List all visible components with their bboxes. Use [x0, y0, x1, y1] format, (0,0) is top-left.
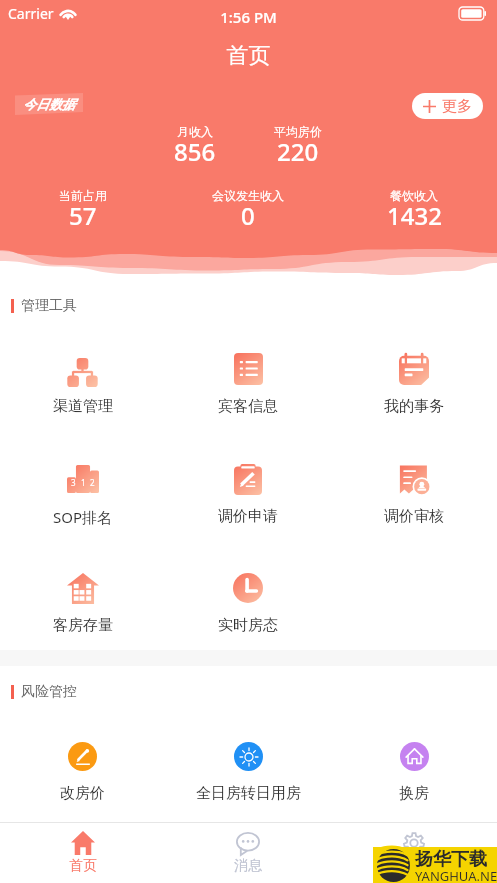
button[interactable]: 渠道管理	[0, 353, 165, 416]
staticText: 月收入	[177, 124, 213, 139]
staticText: 调价申请	[218, 507, 278, 526]
button[interactable]: 改房价	[0, 740, 165, 803]
staticText: 客房存量	[53, 616, 113, 635]
staticText: 换房	[399, 784, 429, 803]
staticText: 今日数据	[23, 96, 75, 112]
staticText: 风险管控	[21, 683, 77, 701]
button[interactable]: 我的事务	[331, 353, 497, 416]
staticText: Carrier	[8, 4, 54, 23]
button[interactable]: 3	[0, 463, 165, 527]
button[interactable]: 换房	[331, 740, 497, 803]
staticText: 平均房价	[274, 124, 322, 139]
staticText: 实时房态	[218, 616, 278, 635]
button[interactable]: 更多	[412, 93, 483, 119]
staticText: 改房价	[60, 784, 105, 803]
staticText: 宾客信息	[218, 397, 278, 416]
staticText: 0	[241, 199, 255, 232]
staticText: 渠道管理	[53, 397, 113, 416]
staticText: 220	[277, 135, 319, 168]
staticText: 扬华下载	[415, 848, 487, 871]
button[interactable]: 客房存量	[0, 572, 165, 635]
staticText: YANGHUA.NET	[415, 867, 497, 883]
button[interactable]: 调价申请	[165, 463, 331, 526]
staticText: 1432	[387, 199, 442, 232]
button[interactable]: Settings	[331, 831, 497, 875]
button[interactable]: 实时房态	[165, 572, 331, 635]
staticText: 餐饮收入	[390, 188, 438, 203]
staticText: 首页	[0, 42, 497, 70]
staticText: 设置	[400, 857, 428, 875]
staticText: 调价审核	[384, 507, 444, 526]
staticText: 首页	[69, 857, 97, 875]
staticText: 57	[69, 199, 97, 232]
button[interactable]: 宾客信息	[165, 353, 331, 416]
staticText: 856	[174, 135, 216, 168]
staticText: 2	[90, 477, 95, 488]
staticText: 我的事务	[384, 397, 444, 416]
staticText: 当前占用	[59, 188, 107, 203]
staticText: 会议发生收入	[212, 188, 284, 203]
button[interactable]: Messages	[165, 831, 331, 875]
staticText: 管理工具	[21, 297, 77, 315]
staticText: 1	[81, 477, 86, 488]
staticText: 3	[71, 477, 76, 488]
button[interactable]: 调价审核	[331, 463, 497, 526]
staticText: 1:56 PM	[0, 7, 497, 27]
button[interactable]: 今日数据	[15, 93, 83, 115]
staticText: 消息	[234, 857, 262, 875]
button[interactable]: 全日房转日用房	[165, 740, 331, 803]
staticText: 全日房转日用房	[196, 784, 301, 803]
staticText: 更多	[442, 97, 472, 116]
staticText: SOP排名	[53, 507, 113, 527]
button[interactable]: Home	[0, 831, 165, 875]
